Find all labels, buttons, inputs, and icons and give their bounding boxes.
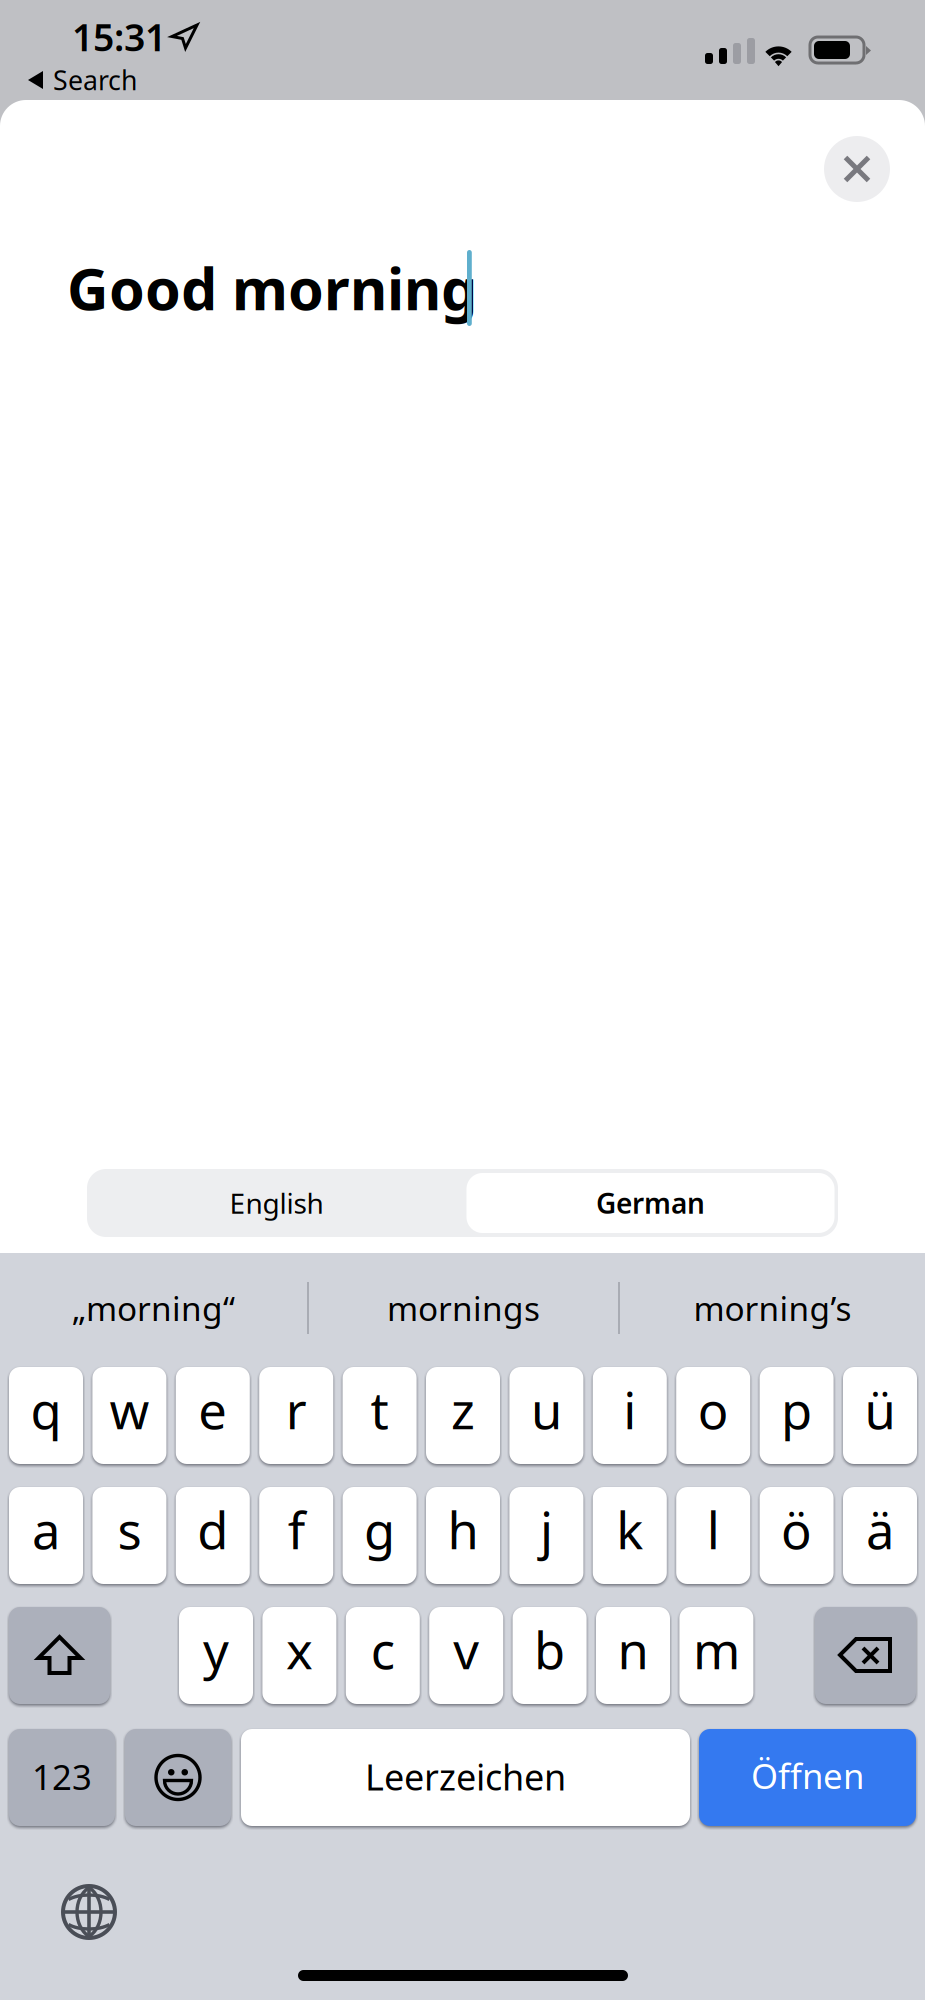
staticText: Leerzeichen bbox=[365, 1753, 566, 1800]
button[interactable]: g bbox=[343, 1487, 417, 1584]
staticText: ü bbox=[864, 1376, 895, 1443]
button[interactable]: German bbox=[466, 1173, 834, 1233]
staticText: z bbox=[451, 1376, 475, 1443]
button[interactable]: mornings bbox=[309, 1253, 618, 1363]
staticText: a bbox=[32, 1496, 60, 1563]
staticText: ä bbox=[866, 1496, 894, 1563]
button[interactable]: Close bbox=[824, 136, 890, 202]
staticText: q bbox=[30, 1376, 61, 1443]
staticText: x bbox=[286, 1616, 313, 1683]
button[interactable]: q bbox=[9, 1367, 83, 1464]
staticText: v bbox=[453, 1616, 479, 1683]
staticText: d bbox=[197, 1496, 228, 1563]
staticText: k bbox=[616, 1496, 643, 1563]
button[interactable]: „morning“ bbox=[0, 1253, 307, 1363]
button[interactable]: b bbox=[513, 1607, 587, 1704]
staticText: s bbox=[117, 1496, 141, 1563]
staticText: e bbox=[198, 1376, 227, 1443]
button[interactable]: f bbox=[259, 1487, 333, 1584]
button[interactable]: Next keyboard bbox=[61, 1884, 117, 1940]
button[interactable]: 123 bbox=[9, 1729, 115, 1826]
button[interactable]: ü bbox=[843, 1367, 917, 1464]
staticText: m bbox=[693, 1616, 740, 1683]
staticText: i bbox=[623, 1376, 636, 1443]
button[interactable]: ö bbox=[760, 1487, 834, 1584]
button[interactable]: Öffnen bbox=[699, 1729, 916, 1826]
button[interactable]: morning’s bbox=[620, 1253, 925, 1363]
button[interactable]: i bbox=[593, 1367, 667, 1464]
staticText: Öffnen bbox=[751, 1752, 864, 1798]
button[interactable]: Shift bbox=[9, 1607, 110, 1704]
button[interactable]: j bbox=[509, 1487, 583, 1584]
staticText: n bbox=[617, 1616, 648, 1683]
button[interactable]: t bbox=[343, 1367, 417, 1464]
staticText: 15:31 bbox=[72, 12, 166, 62]
button[interactable]: k bbox=[593, 1487, 667, 1584]
button[interactable]: ä bbox=[843, 1487, 917, 1584]
button[interactable]: m bbox=[679, 1607, 753, 1704]
staticText: Good morning bbox=[67, 250, 477, 326]
staticText: b bbox=[534, 1616, 565, 1683]
button[interactable]: y bbox=[179, 1607, 253, 1704]
button[interactable]: Delete bbox=[815, 1607, 916, 1704]
staticText: English bbox=[229, 1184, 323, 1222]
staticText: 123 bbox=[32, 1753, 92, 1799]
button[interactable]: z bbox=[426, 1367, 500, 1464]
staticText: Search bbox=[53, 62, 137, 98]
button[interactable]: l bbox=[676, 1487, 750, 1584]
button[interactable]: Emoji bbox=[125, 1729, 231, 1826]
button[interactable]: v bbox=[429, 1607, 503, 1704]
button[interactable]: u bbox=[509, 1367, 583, 1464]
button[interactable]: x bbox=[262, 1607, 336, 1704]
button[interactable]: w bbox=[92, 1367, 166, 1464]
staticText: ö bbox=[781, 1496, 812, 1563]
staticText: g bbox=[364, 1496, 395, 1563]
staticText: r bbox=[286, 1376, 307, 1443]
staticText: morning’s bbox=[693, 1286, 851, 1330]
button[interactable]: r bbox=[259, 1367, 333, 1464]
staticText: p bbox=[781, 1376, 812, 1443]
staticText: t bbox=[371, 1376, 389, 1443]
staticText: f bbox=[288, 1496, 305, 1563]
button[interactable]: p bbox=[760, 1367, 834, 1464]
button[interactable]: s bbox=[92, 1487, 166, 1584]
button[interactable]: h bbox=[426, 1487, 500, 1584]
button[interactable]: English bbox=[87, 1169, 466, 1237]
staticText: mornings bbox=[387, 1286, 540, 1330]
staticText: h bbox=[447, 1496, 478, 1563]
button[interactable]: Leerzeichen bbox=[241, 1729, 690, 1826]
button[interactable]: Search bbox=[28, 63, 137, 97]
button[interactable]: n bbox=[596, 1607, 670, 1704]
button[interactable]: o bbox=[676, 1367, 750, 1464]
staticText: o bbox=[698, 1376, 729, 1443]
staticText: German bbox=[596, 1184, 705, 1222]
staticText: l bbox=[707, 1496, 720, 1563]
staticText: w bbox=[109, 1376, 149, 1443]
button[interactable]: d bbox=[176, 1487, 250, 1584]
button[interactable]: a bbox=[9, 1487, 83, 1584]
staticText: c bbox=[371, 1616, 395, 1683]
staticText: u bbox=[531, 1376, 562, 1443]
staticText: y bbox=[203, 1616, 229, 1683]
button[interactable]: e bbox=[176, 1367, 250, 1464]
staticText: „morning“ bbox=[72, 1286, 235, 1330]
staticText: j bbox=[540, 1496, 553, 1563]
button[interactable]: c bbox=[346, 1607, 420, 1704]
